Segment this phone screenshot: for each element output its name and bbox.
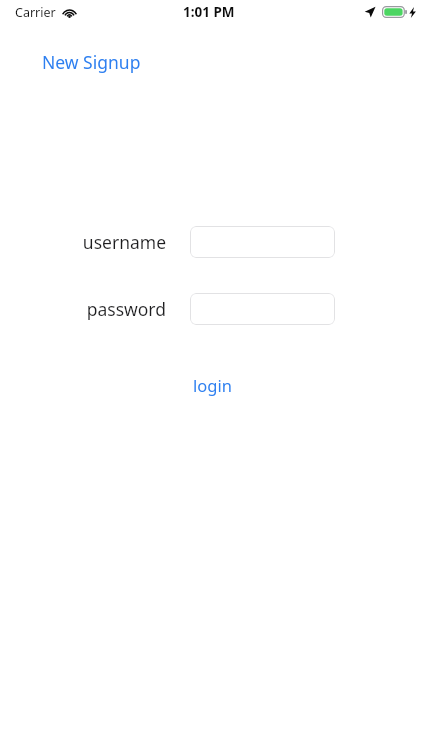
- staticText: New Signup: [42, 50, 141, 74]
- button[interactable]: username: [190, 226, 335, 258]
- other: Battery: [382, 6, 408, 18]
- staticText: 1:01 PM: [183, 3, 235, 21]
- other: Charging: [409, 7, 416, 18]
- staticText: username: [82, 230, 166, 254]
- other: Location: [364, 6, 376, 18]
- button[interactable]: password: [190, 293, 335, 325]
- staticText: login: [193, 374, 232, 396]
- button[interactable]: login: [187, 371, 238, 399]
- other: Wi-Fi: [62, 7, 77, 18]
- button[interactable]: New Signup: [40, 47, 143, 77]
- staticText: Carrier: [15, 4, 56, 21]
- staticText: password: [86, 297, 166, 321]
